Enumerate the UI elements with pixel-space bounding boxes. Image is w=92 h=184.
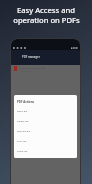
staticText: Print file bbox=[17, 139, 27, 142]
button[interactable]: Open file bbox=[14, 105, 77, 115]
button[interactable]: Print file bbox=[14, 135, 77, 145]
staticText: operation on PDFs bbox=[13, 15, 80, 25]
staticText: New Document 1.pdf bbox=[20, 66, 45, 69]
staticText: PDF Actions bbox=[17, 100, 34, 104]
staticText: Delete file bbox=[17, 119, 29, 122]
button[interactable]: Share file bbox=[14, 145, 77, 155]
button[interactable]: Delete file bbox=[14, 115, 77, 125]
staticText: Share file bbox=[17, 149, 28, 152]
button[interactable]: Rename file bbox=[14, 125, 77, 135]
staticText: Open file bbox=[17, 109, 28, 112]
staticText: Easy Access and bbox=[17, 5, 75, 15]
staticText: PDF manager bbox=[22, 55, 40, 59]
staticText: Rename file bbox=[17, 129, 31, 132]
